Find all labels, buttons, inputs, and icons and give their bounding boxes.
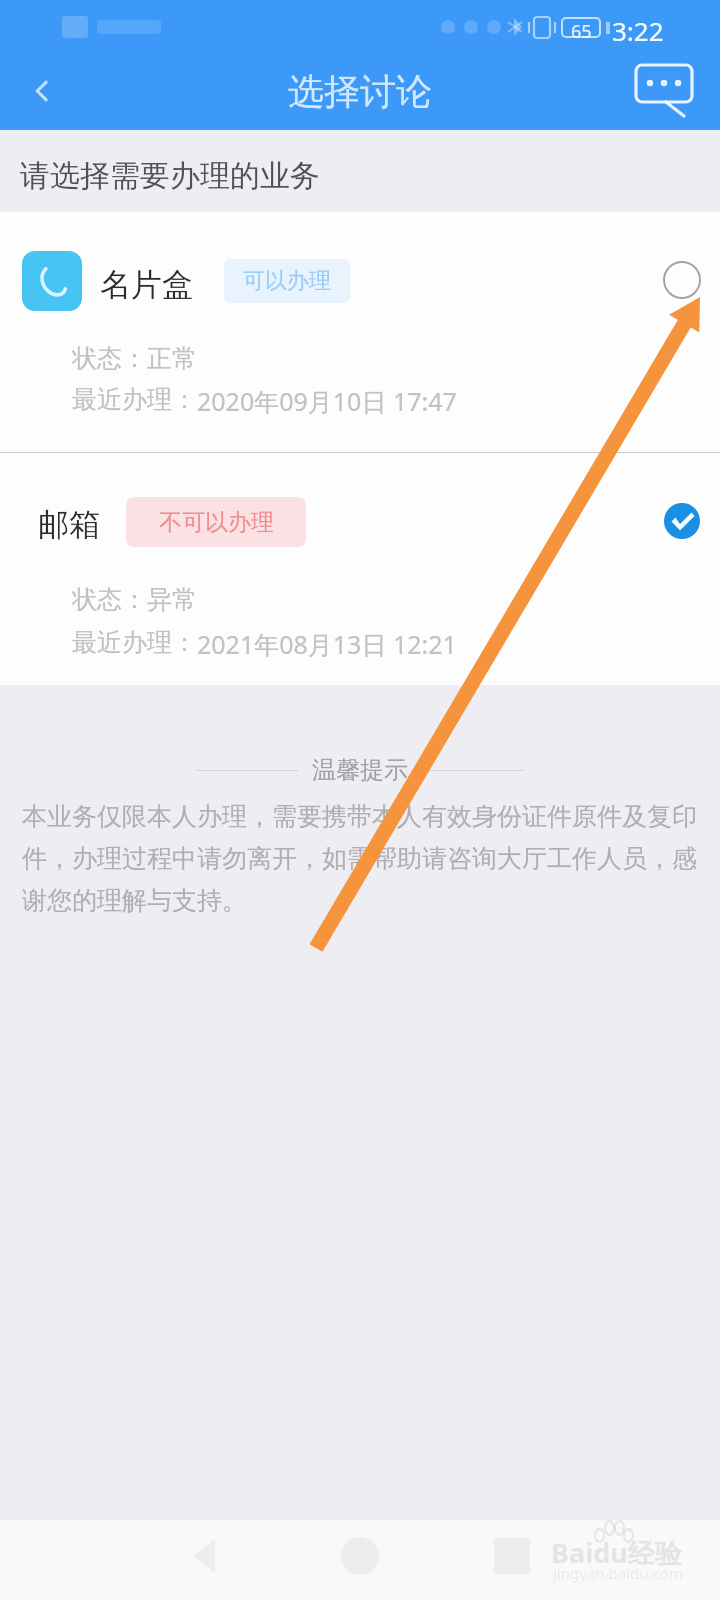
- staticText: 2020年09月10日 17:47: [197, 384, 457, 418]
- button[interactable]: 邮箱: [0, 453, 720, 685]
- button[interactable]: Select item: [654, 252, 710, 308]
- staticText: 正常: [147, 343, 197, 374]
- staticText: jingyan.baidu.com: [553, 1563, 683, 1583]
- staticText: 最近办理：: [72, 384, 197, 415]
- staticText: 最近办理：: [72, 627, 197, 658]
- staticText: 本业务仅限本人办理，需要携带本人有效身份证件原件及复印件，办理过程中请勿离开，如…: [22, 801, 698, 917]
- button[interactable]: Recents: [476, 1520, 548, 1592]
- button[interactable]: Back: [14, 63, 70, 119]
- staticText: 温馨提示: [312, 755, 408, 785]
- staticText: 2021年08月13日 12:21: [197, 627, 457, 661]
- staticText: 异常: [147, 584, 197, 615]
- staticText: 状态：: [72, 584, 147, 615]
- button[interactable]: Home: [324, 1520, 396, 1592]
- staticText: 不可以办理: [159, 508, 274, 537]
- staticText: 3:22: [612, 13, 664, 48]
- staticText: 可以办理: [243, 267, 331, 295]
- button[interactable]: Selected item: [654, 493, 710, 549]
- button[interactable]: Messages: [626, 55, 706, 127]
- staticText: 65: [571, 19, 592, 44]
- staticText: 请选择需要办理的业务: [20, 157, 320, 195]
- staticText: 状态：: [72, 343, 147, 374]
- staticText: Baidu经验: [551, 1534, 682, 1571]
- button[interactable]: Back: [169, 1520, 241, 1592]
- staticText: 名片盒: [100, 265, 193, 304]
- staticText: 选择讨论: [288, 69, 432, 114]
- staticText: 邮箱: [38, 505, 100, 544]
- button[interactable]: 名片盒: [0, 212, 720, 452]
